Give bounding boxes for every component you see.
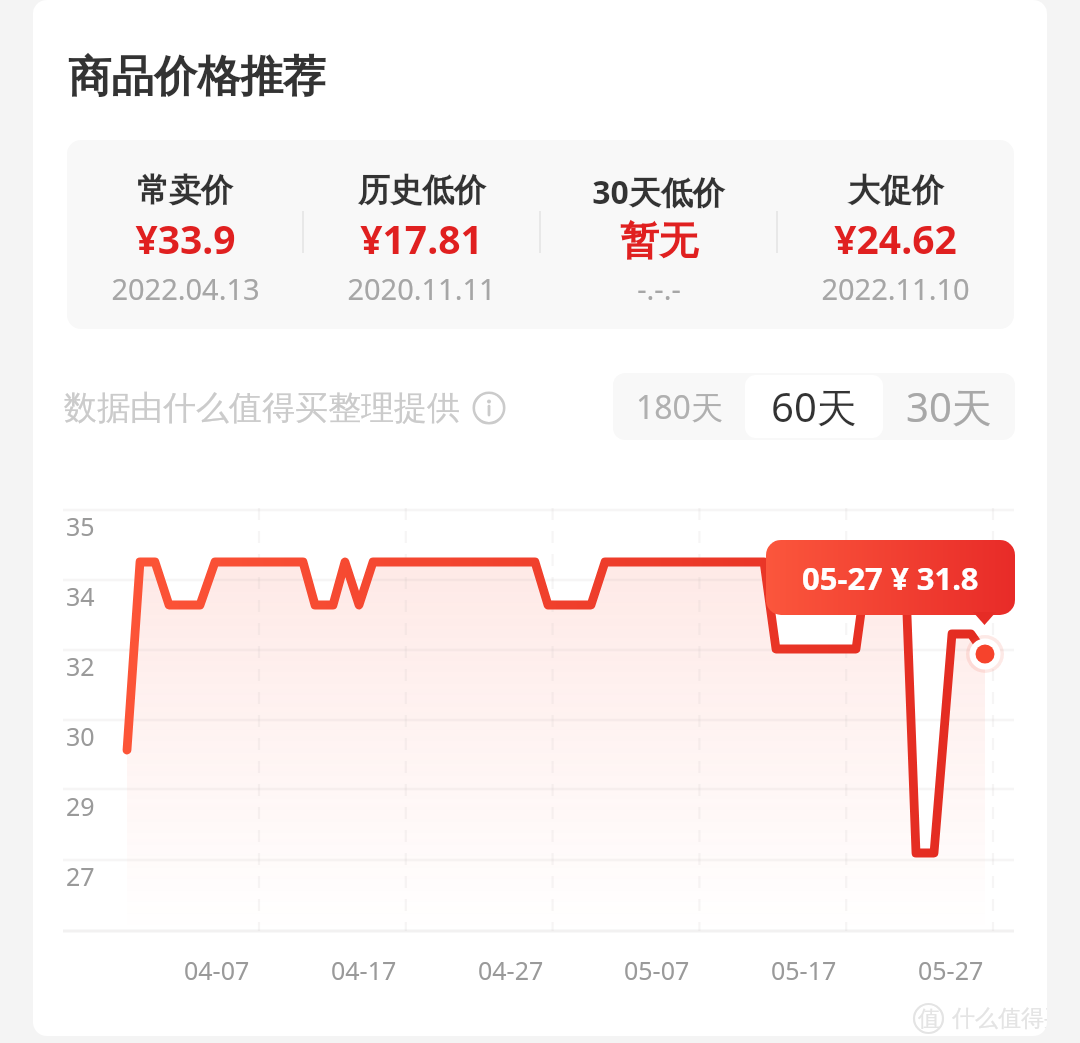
staticText: 什么值得买 (952, 1004, 1047, 1033)
staticText: 35 (66, 509, 95, 543)
button[interactable]: 常卖价 (67, 140, 1014, 329)
staticText: 30天 (906, 379, 992, 434)
button[interactable]: 180天 (613, 373, 745, 440)
staticText: -.-.- (637, 269, 681, 308)
staticText: 2020.11.11 (347, 269, 496, 308)
staticText: 27 (66, 859, 95, 893)
staticText: 34 (66, 579, 95, 613)
staticText: 商品价格推荐 (68, 50, 326, 104)
staticText: 常卖价 (137, 170, 233, 210)
other: 数据说明 (472, 391, 506, 425)
staticText: 04-17 (331, 953, 397, 987)
staticText: 暂无 (620, 216, 698, 265)
staticText: 2022.04.13 (111, 269, 260, 308)
staticText: 30天低价 (592, 170, 725, 214)
staticText: 30 (66, 719, 95, 753)
staticText: 值 (918, 1005, 940, 1033)
staticText: ¥24.62 (834, 212, 957, 265)
staticText: 04-07 (184, 953, 250, 987)
staticText: 04-27 (478, 953, 544, 987)
staticText: ¥33.9 (135, 212, 236, 265)
staticText: ¥17.81 (360, 212, 483, 265)
staticText: 180天 (636, 385, 723, 429)
button[interactable]: 30天 (883, 373, 1015, 440)
staticText: 历史低价 (358, 170, 486, 210)
staticText: 05-27 ¥ 31.8 (802, 557, 979, 599)
staticText: 29 (66, 789, 95, 823)
staticText: 05-17 (771, 953, 837, 987)
staticText: 32 (66, 649, 95, 683)
button[interactable]: 数据由什么值得买整理提供 (64, 387, 506, 429)
staticText: 大促价 (848, 170, 944, 210)
button[interactable]: 60天 (745, 375, 883, 438)
staticText: 60天 (771, 379, 857, 434)
staticText: 数据由什么值得买整理提供 (64, 387, 460, 429)
staticText: 05-27 (918, 953, 984, 987)
staticText: 05-07 (624, 953, 690, 987)
staticText: 2022.11.10 (821, 269, 970, 308)
